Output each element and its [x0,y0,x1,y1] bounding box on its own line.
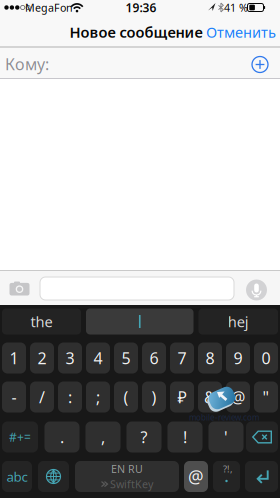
button[interactable]: ₽ [170,381,194,412]
button[interactable]: To: recipient field [0,48,244,78]
button[interactable]: & [198,381,222,412]
staticText: - [11,386,16,408]
button[interactable]: Delete [246,421,278,452]
button[interactable]: 5 [114,342,138,373]
button[interactable]: #+= [2,421,38,452]
button[interactable]: 1 [2,342,26,373]
staticText: ; [96,386,100,408]
staticText: MegaFon [25,0,73,15]
staticText: ' [224,426,228,448]
staticText: ! [183,426,187,448]
staticText: . [60,426,64,448]
button[interactable]: Message text field [40,277,234,300]
button[interactable]: ) [142,381,166,412]
staticText: the [30,312,52,331]
button[interactable]: Record audio message [245,279,267,301]
staticText: 41 % [224,0,248,15]
staticText: Новое сообщение [69,22,202,42]
button[interactable]: Punctuation [213,461,240,492]
button[interactable]: Return [245,461,278,492]
button[interactable]: . [44,421,79,452]
button[interactable]: " [254,381,278,412]
button[interactable]: 8 [198,342,222,373]
staticText: hej [228,312,249,331]
staticText: 5 [121,347,130,369]
button[interactable]: abc [2,461,32,492]
button[interactable]: 9 [226,342,250,373]
button[interactable]: : [58,381,82,412]
staticText: 8 [205,347,214,369]
button[interactable]: 7 [170,342,194,373]
button[interactable]: Current input [86,308,193,334]
button[interactable]: the [2,308,81,334]
staticText: 9 [233,347,242,369]
button[interactable]: ; [86,381,110,412]
button[interactable]: @ [226,381,250,412]
staticText: / [39,386,45,408]
staticText: SwiftKey [110,477,153,491]
staticText: ) [151,386,156,408]
button[interactable]: / [30,381,54,412]
staticText: EN RU [111,462,143,476]
staticText: ( [123,386,128,408]
staticText: 19:36 [125,0,156,15]
staticText: 7 [177,347,186,369]
staticText: ?!, [223,463,233,475]
button[interactable]: hej [198,308,278,334]
staticText: " [262,386,269,408]
button[interactable]: , [85,421,120,452]
button[interactable]: Отменить [206,22,276,42]
staticText: , [101,426,105,448]
button[interactable]: Add Contact [250,54,270,74]
button[interactable]: ' [208,421,243,452]
button[interactable]: Camera [8,280,30,296]
button[interactable]: 2 [30,342,54,373]
button[interactable]: ( [114,381,138,412]
staticText: 2 [37,347,46,369]
staticText: Отменить [206,22,276,42]
button[interactable]: - [2,381,26,412]
button[interactable]: 4 [86,342,110,373]
staticText: abc [6,468,27,485]
staticText: ₽ [177,386,186,408]
button[interactable]: ! [167,421,202,452]
button[interactable]: Next keyboard [38,461,69,492]
staticText: & [204,386,216,408]
button[interactable]: ? [126,421,161,452]
button[interactable]: 0 [254,342,278,373]
staticText: 4 [93,347,102,369]
staticText: #+= [9,429,31,445]
staticText: ? [140,426,147,448]
staticText: Кому: [5,53,49,75]
staticText: @ [231,386,245,408]
button[interactable]: @ [184,461,208,492]
button[interactable]: 3 [58,342,82,373]
staticText: : [68,386,72,408]
staticText: @ [188,465,204,488]
button[interactable]: Space [75,461,179,492]
staticText: 0 [261,347,270,369]
staticText: 6 [149,347,158,369]
button[interactable]: 6 [142,342,166,373]
staticText: 3 [65,347,74,369]
staticText: 1 [9,347,18,369]
staticText: mobile-review.com [189,412,259,423]
